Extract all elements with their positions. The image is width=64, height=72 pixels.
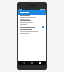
button[interactable]: Home: [30, 61, 34, 65]
button[interactable]: [18, 10, 46, 15]
button[interactable]: Back: [22, 61, 26, 65]
button[interactable]: Recent apps: [38, 61, 42, 65]
button[interactable]: [18, 15, 46, 20]
button[interactable]: [18, 29, 46, 34]
button[interactable]: [18, 20, 46, 25]
button[interactable]: Toggle setting: [41, 26, 44, 28]
button[interactable]: Toggle setting: [18, 25, 46, 29]
